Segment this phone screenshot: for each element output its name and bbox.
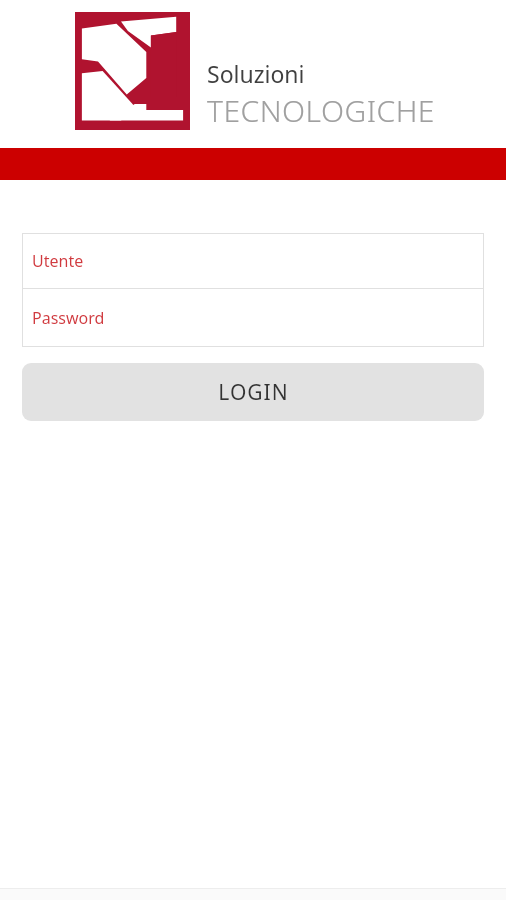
staticText: Password: [32, 307, 105, 329]
button[interactable]: Utente: [22, 233, 484, 288]
button[interactable]: Password: [22, 289, 484, 347]
staticText: Soluzioni: [207, 58, 305, 89]
button[interactable]: LOGIN: [22, 363, 484, 421]
staticText: LOGIN: [218, 378, 289, 407]
staticText: Utente: [32, 250, 84, 272]
staticText: TECNOLOGICHE: [207, 90, 435, 131]
